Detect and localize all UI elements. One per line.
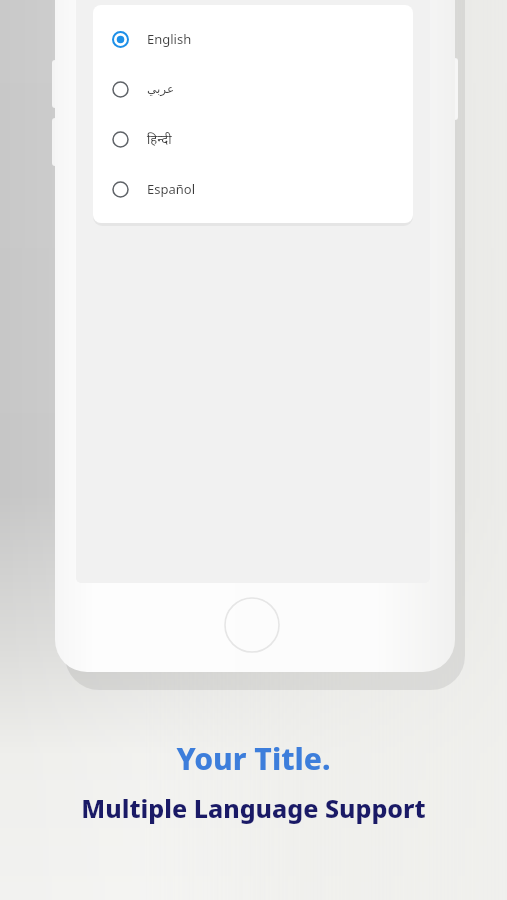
staticText: Español	[147, 180, 195, 198]
staticText: عربي	[147, 82, 175, 96]
button[interactable]: عربي	[93, 64, 413, 114]
staticText: Multiple Language Support	[81, 791, 426, 825]
staticText: English	[147, 30, 192, 48]
staticText: Your Title.	[176, 738, 331, 779]
button[interactable]: English	[93, 14, 413, 64]
staticText: हिन्दी	[147, 130, 172, 148]
button[interactable]: Español	[93, 164, 413, 214]
button[interactable]: हिन्दी	[93, 114, 413, 164]
